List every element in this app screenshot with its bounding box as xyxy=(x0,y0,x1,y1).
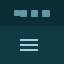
button[interactable]: Menu xyxy=(12,28,46,62)
